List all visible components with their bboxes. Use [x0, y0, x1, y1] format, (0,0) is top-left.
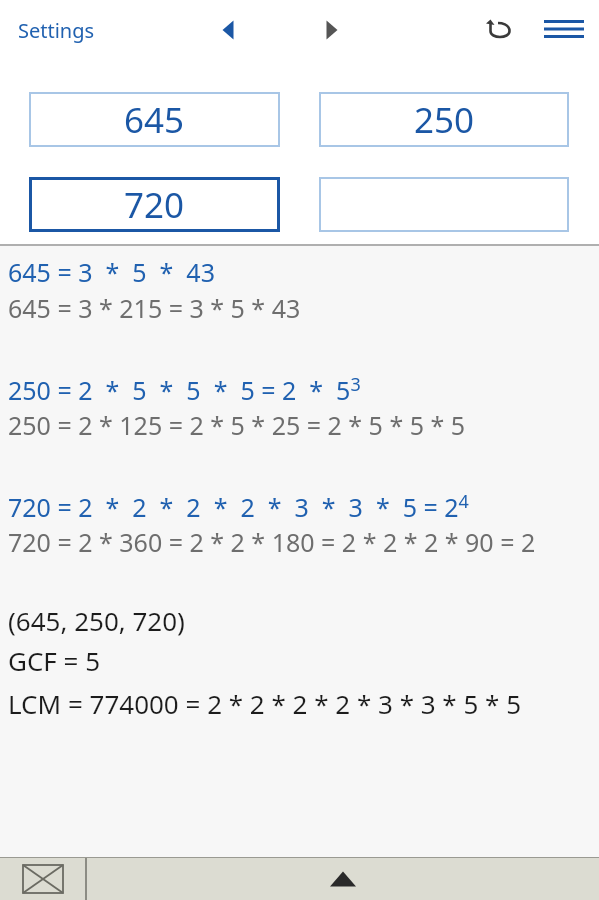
button[interactable]: Previous: [204, 8, 252, 52]
button[interactable]: Mail: [0, 858, 85, 900]
staticText: 250 = 2 * 125 = 2 * 5 * 25 = 2 * 5 * 5 *…: [8, 408, 466, 446]
button[interactable]: 720: [29, 177, 280, 232]
button[interactable]: 645: [29, 92, 280, 147]
staticText: 720 = 2 * 2 * 2 * 2 * 3 * 3 * 5 = 24: [8, 489, 469, 525]
staticText: 720: [124, 181, 185, 229]
button[interactable]: Menu: [538, 7, 590, 51]
staticText: 645 = 3 * 5 * 43: [8, 255, 215, 291]
staticText: 250 = 2 * 5 * 5 * 5 = 2 * 53: [8, 372, 361, 408]
staticText: 720 = 2 * 360 = 2 * 2 * 180 = 2 * 2 * 2 …: [8, 525, 536, 563]
staticText: 645 = 3 * 215 = 3 * 5 * 43: [8, 291, 301, 329]
staticText: GCF = 5: [8, 643, 101, 683]
button[interactable]: Undo: [477, 7, 523, 51]
button[interactable]: [319, 177, 569, 232]
button[interactable]: Settings: [18, 17, 95, 44]
button[interactable]: Scroll up: [87, 858, 599, 900]
staticText: 250: [414, 96, 475, 144]
button[interactable]: 250: [319, 92, 569, 147]
staticText: 645: [124, 96, 185, 144]
button[interactable]: Next: [308, 8, 356, 52]
staticText: LCM = 774000 = 2 * 2 * 2 * 2 * 3 * 3 * 5…: [8, 686, 522, 726]
staticText: (645, 250, 720): [8, 603, 185, 643]
